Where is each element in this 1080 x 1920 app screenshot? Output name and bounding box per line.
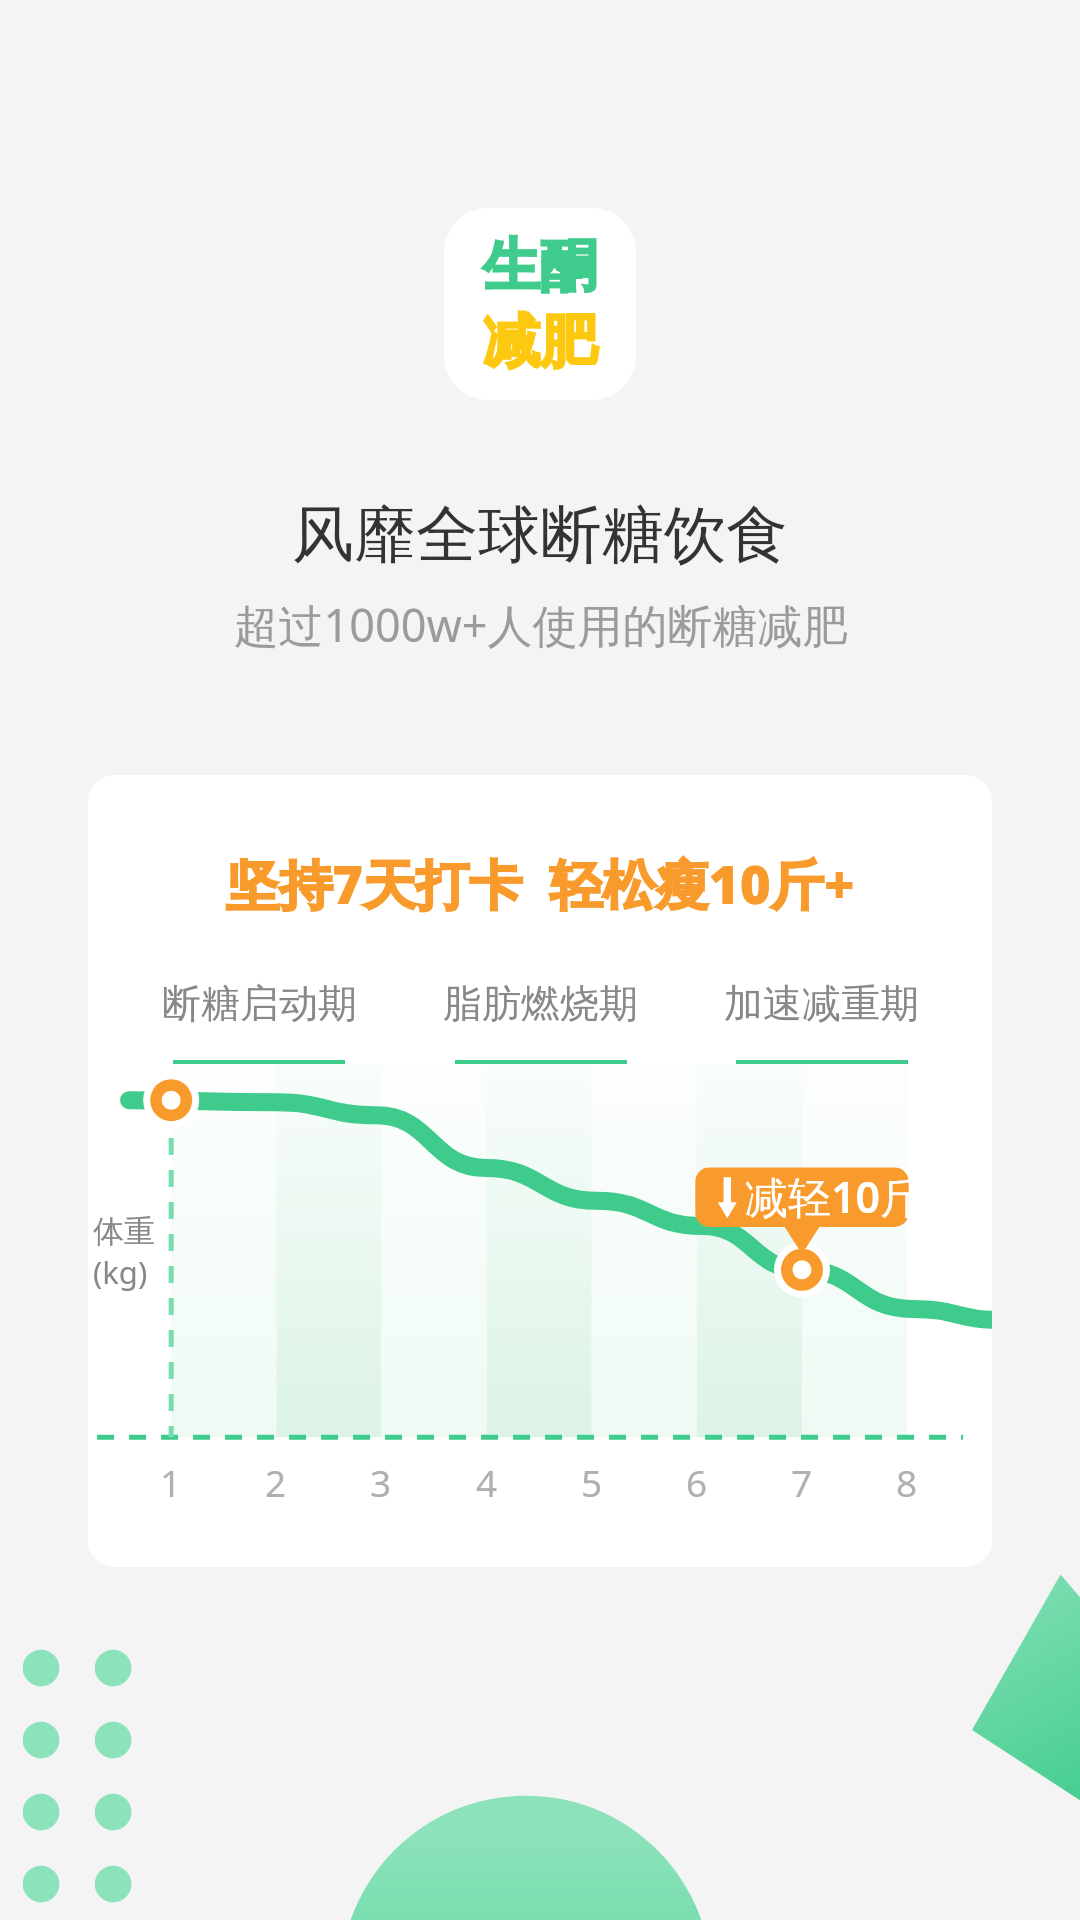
staticText: 5 (581, 1457, 603, 1507)
staticText: 减轻10斤 (745, 1167, 924, 1226)
staticText: 6 (686, 1457, 708, 1507)
staticText: 8 (896, 1457, 918, 1507)
staticText: 生酮 (483, 230, 597, 302)
staticText: 断糖启动期 (162, 979, 357, 1028)
staticText: 7 (791, 1457, 813, 1507)
staticText: 坚持7天打卡 轻松瘦10斤+ (226, 847, 855, 919)
staticText: 减肥 (483, 306, 597, 378)
staticText: 体重 (93, 1212, 155, 1251)
staticText: 超过1000w+人使用的断糖减肥 (233, 594, 848, 655)
staticText: 脂肪燃烧期 (443, 979, 638, 1028)
staticText: 风靡全球断糖饮食 (292, 496, 788, 574)
button[interactable]: 坚持7天打卡 轻松瘦10斤+ (88, 775, 992, 1567)
staticText: 4 (476, 1457, 498, 1507)
staticText: 加速减重期 (724, 979, 919, 1028)
staticText: 3 (370, 1457, 392, 1507)
staticText: 2 (265, 1457, 287, 1507)
staticText: 1 (160, 1457, 182, 1507)
button[interactable]: 生酮减肥 application icon (444, 208, 636, 400)
staticText: (kg) (93, 1251, 148, 1293)
